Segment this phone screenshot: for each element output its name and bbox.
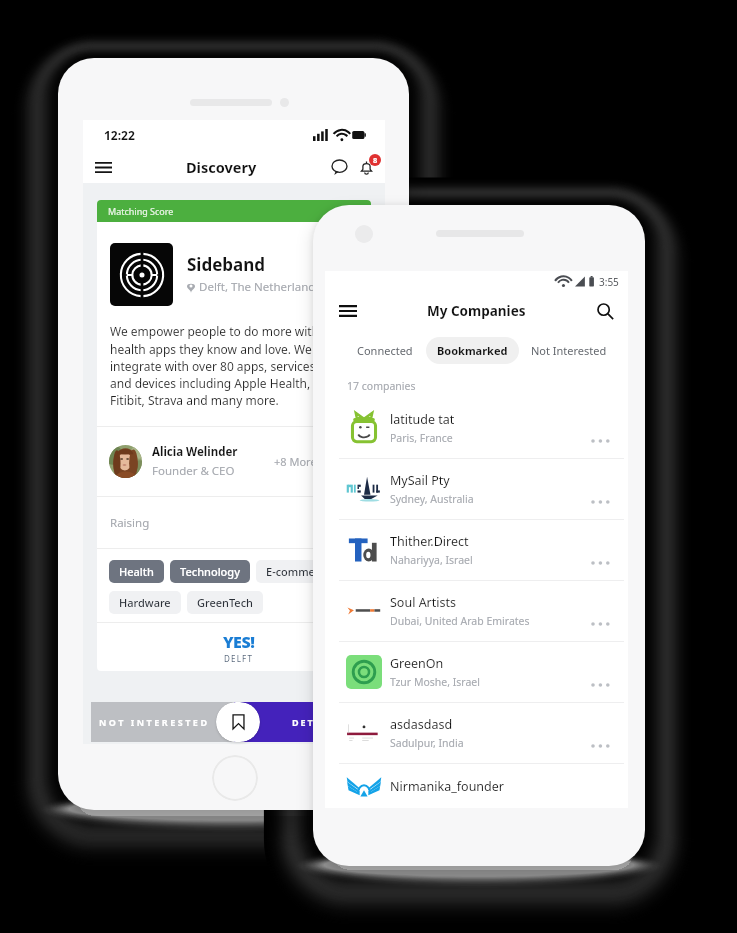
button[interactable]: More options [586, 612, 610, 636]
staticText: NOT INTERESTED [99, 716, 210, 728]
button[interactable]: Not Interested [520, 337, 618, 364]
staticText: 17 companies [347, 379, 416, 393]
button[interactable]: More options [586, 734, 610, 758]
staticText: Raising [110, 515, 150, 531]
button[interactable]: Bookmarked [426, 337, 519, 364]
staticText: asdasdasd [390, 716, 453, 733]
button[interactable]: Technology [170, 560, 250, 583]
staticText: Sideband [187, 253, 266, 276]
staticText: 3:55 [599, 275, 619, 289]
staticText: Discovery [186, 157, 257, 177]
button[interactable]: Hardware [109, 591, 181, 614]
button[interactable]: More options [586, 490, 610, 514]
button[interactable]: GreenTech [187, 591, 263, 614]
staticText: Bookmarked [437, 343, 508, 358]
button[interactable]: GreenOn [325, 642, 628, 702]
staticText: My Companies [427, 302, 526, 320]
staticText: Hardware [119, 595, 171, 610]
staticText: MySail Pty [390, 472, 450, 489]
button[interactable]: Soul Artists [325, 581, 628, 641]
button[interactable]: Thither.Direct [325, 520, 628, 580]
staticText: 12:22 [104, 127, 135, 143]
staticText: 8 [373, 155, 378, 165]
button[interactable]: Connected [346, 337, 424, 364]
button[interactable]: Notifications [353, 154, 379, 180]
staticText: Delft, The Netherlands [199, 279, 321, 295]
staticText: Matching Score [108, 205, 174, 217]
button[interactable]: Messages [326, 154, 352, 180]
button[interactable]: DETAILS [234, 702, 378, 742]
staticText: Thither.Direct [390, 533, 469, 550]
button[interactable]: latitude tat [325, 398, 628, 458]
staticText: Sydney, Australia [390, 492, 474, 506]
staticText: latitude tat [390, 411, 455, 428]
staticText: Dubai, United Arab Emirates [390, 614, 530, 628]
button[interactable]: asdasdasd [325, 703, 628, 763]
staticText: DELFT [224, 653, 254, 664]
staticText: +8 More [274, 454, 317, 469]
staticText: Health [119, 564, 154, 579]
button[interactable]: More options [586, 551, 610, 575]
staticText: Tzur Moshe, Israel [390, 675, 481, 689]
staticText: Connected [357, 343, 413, 358]
staticText: GreenTech [197, 595, 253, 610]
staticText: Nahariyya, Israel [390, 553, 473, 567]
staticText: Alicia Welinder [152, 444, 238, 460]
button[interactable]: Menu [89, 153, 117, 181]
button[interactable]: More options [586, 673, 610, 697]
staticText: GreenOn [390, 655, 444, 672]
staticText: DETAILS [292, 716, 342, 728]
staticText: Sadulpur, India [390, 736, 464, 750]
button[interactable]: Menu [334, 297, 362, 325]
staticText: Technology [180, 564, 240, 579]
button[interactable]: Bookmark [216, 702, 260, 742]
staticText: YES! [223, 631, 255, 653]
button[interactable]: Nirmanika_founder [325, 764, 628, 808]
button[interactable]: More options [586, 429, 610, 453]
staticText: Founder & CEO [152, 463, 235, 479]
button[interactable]: Health [109, 560, 164, 583]
staticText: Not Interested [531, 343, 607, 358]
staticText: Nirmanika_founder [390, 778, 504, 795]
staticText: We empower people to do more with the he… [110, 323, 341, 408]
button[interactable]: MySail Pty [325, 459, 628, 519]
staticText: E-commerce [266, 564, 332, 579]
staticText: Soul Artists [390, 594, 457, 611]
button[interactable]: Search [591, 297, 619, 325]
staticText: Paris, France [390, 431, 453, 445]
button[interactable]: NOT INTERESTED [91, 702, 234, 742]
button[interactable]: E-commerce [256, 560, 342, 583]
